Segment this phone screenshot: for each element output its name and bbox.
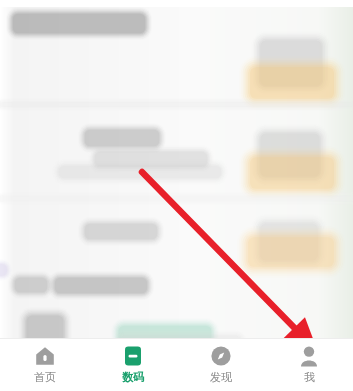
button[interactable]: 数码 (89, 339, 177, 391)
staticText: Baidu 经验 (229, 344, 311, 366)
staticText: 数码 (122, 370, 144, 384)
staticText: jingyan.baidu.com (229, 366, 299, 377)
staticText: 首页 (34, 370, 56, 384)
staticText: 我 (304, 370, 315, 384)
button[interactable]: 首页 (0, 339, 89, 391)
staticText: 发现 (210, 370, 232, 384)
button[interactable]: 发现 (177, 339, 265, 391)
button[interactable]: 我 (265, 339, 353, 391)
